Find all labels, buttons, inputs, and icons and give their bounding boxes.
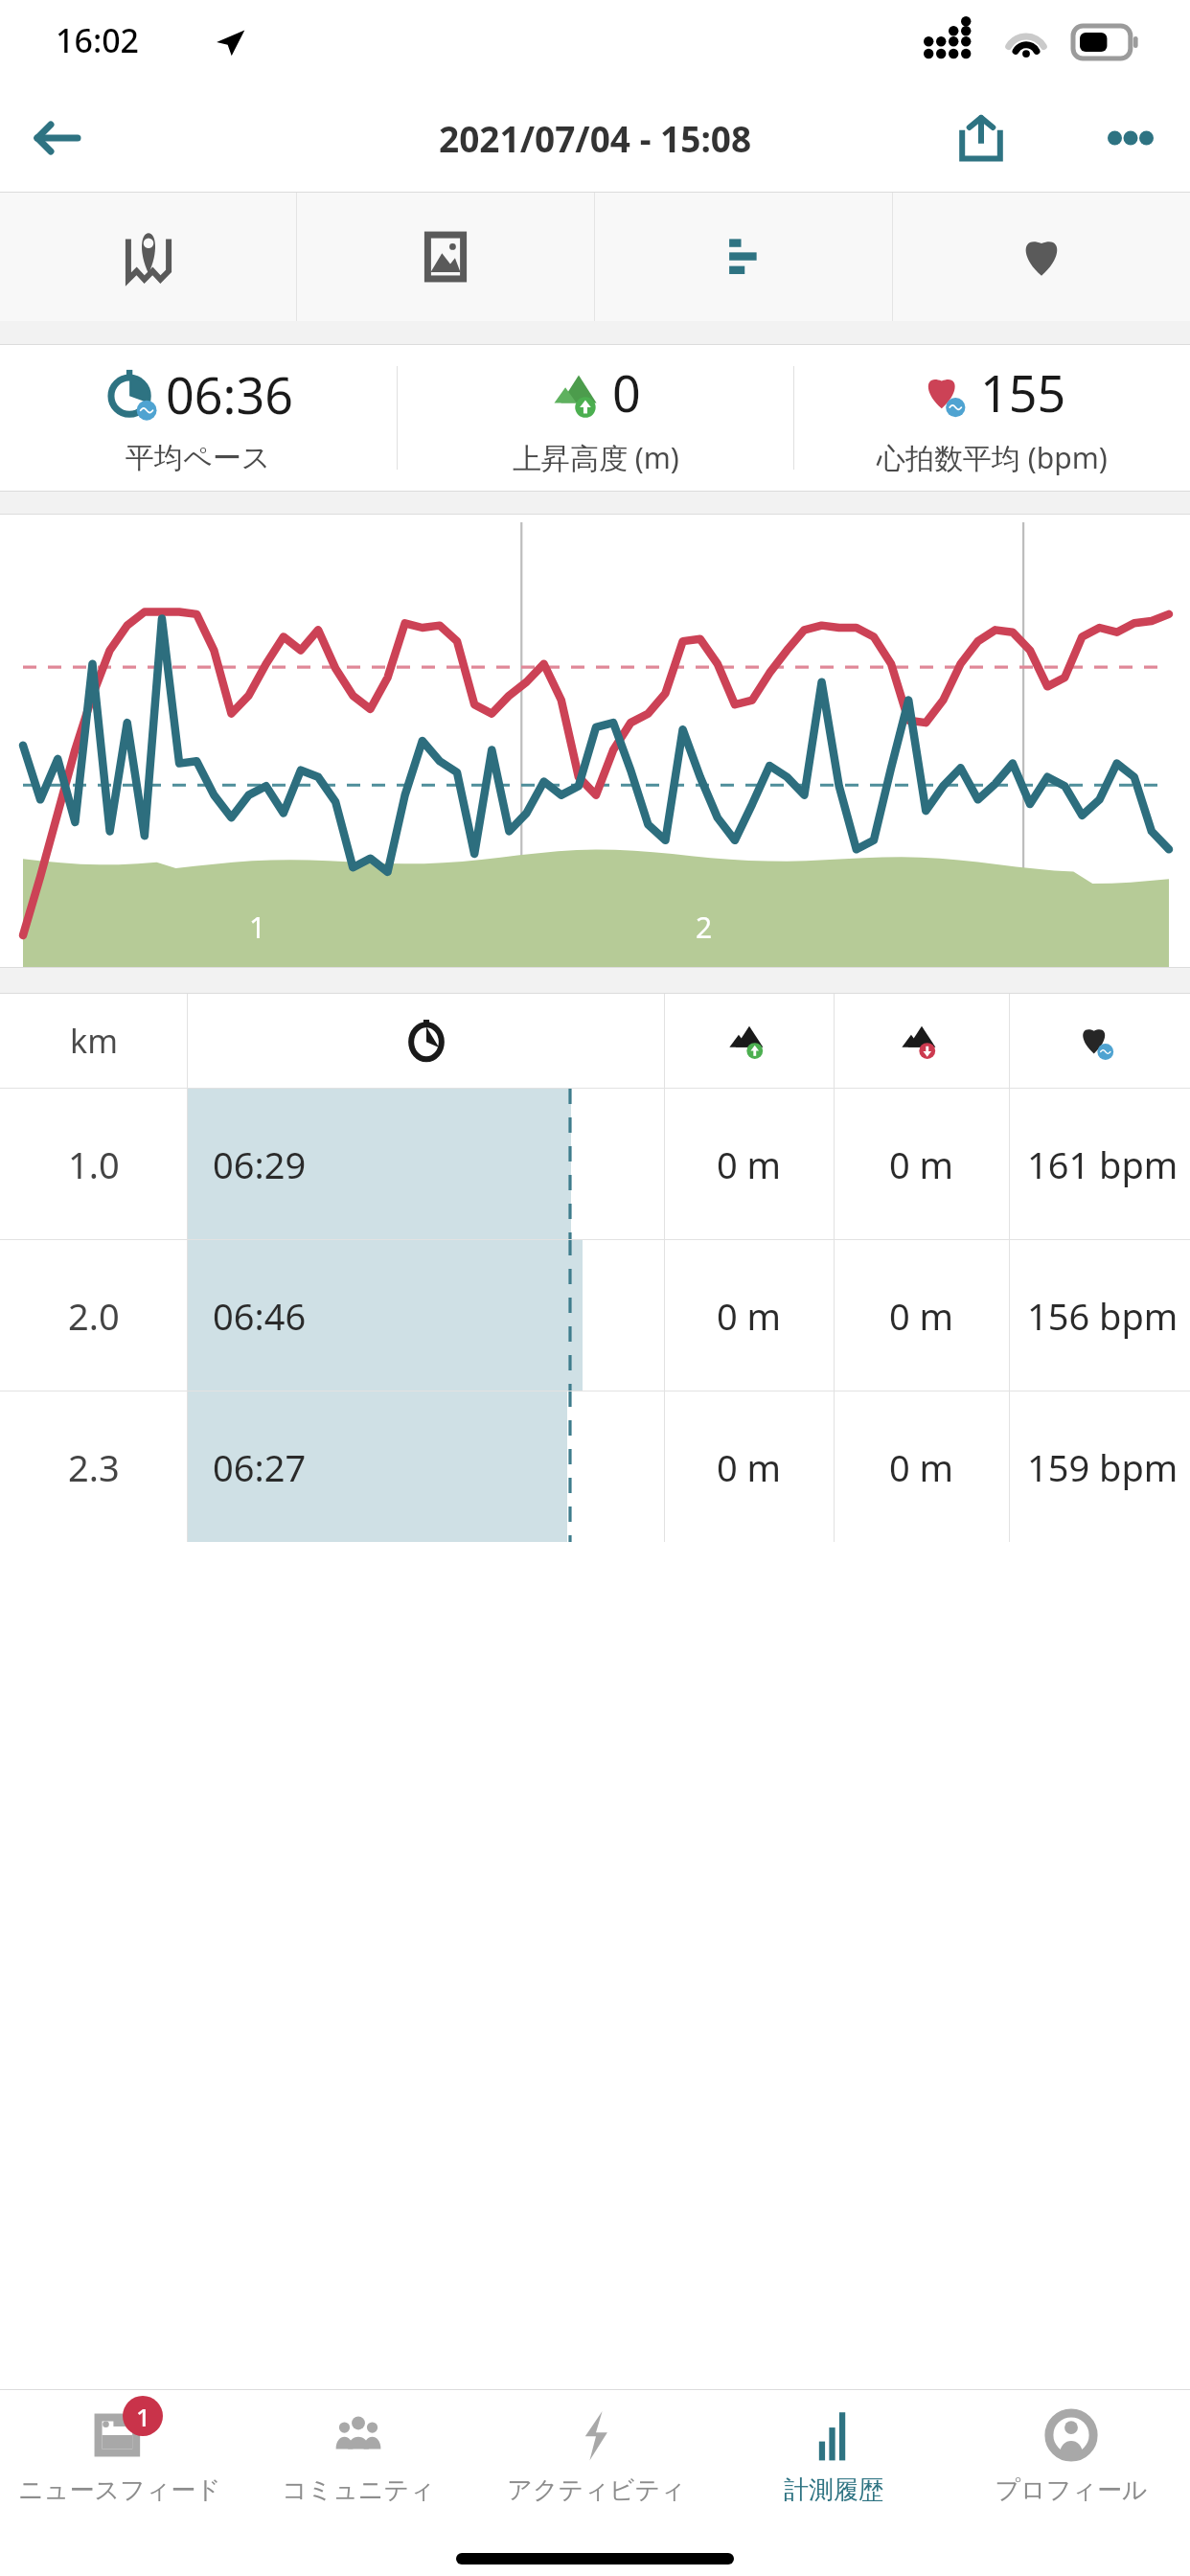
staticText: 06:29 (213, 1139, 307, 1189)
button[interactable]: Heart rate (893, 193, 1190, 321)
button[interactable]: Photos (297, 193, 594, 321)
button[interactable]: 1.0 (0, 1089, 1190, 1239)
button[interactable]: 155 (794, 345, 1190, 491)
button[interactable]: Map (0, 193, 296, 321)
button[interactable]: 0 (398, 345, 793, 491)
staticText: 心拍数平均 (bpm) (877, 438, 1108, 477)
staticText: 0 m (717, 1291, 782, 1341)
staticText: 161 bpm (1027, 1139, 1179, 1189)
staticText: アクティビティ (507, 2474, 686, 2506)
staticText: 156 bpm (1027, 1291, 1179, 1341)
staticText: 1 (249, 908, 266, 947)
staticText: 0 m (717, 1139, 782, 1189)
staticText: 0 m (889, 1442, 954, 1492)
button[interactable]: 1 (0, 2390, 239, 2534)
button[interactable]: アクティビティ (477, 2390, 715, 2534)
button[interactable]: 2.3 (0, 1391, 1190, 1542)
staticText: コミュニティ (282, 2474, 435, 2506)
staticText: プロフィール (995, 2474, 1148, 2506)
staticText: 2.0 (68, 1291, 120, 1341)
button[interactable]: Stats (595, 193, 892, 321)
staticText: 0 m (889, 1291, 954, 1341)
button[interactable]: Share (943, 100, 1019, 176)
staticText: 平均ペース (126, 440, 271, 476)
staticText: 0 (612, 358, 641, 426)
button[interactable]: 計測履歴 (715, 2390, 952, 2534)
staticText: 1.0 (68, 1139, 120, 1189)
staticText: 上昇高度 (m) (513, 438, 679, 477)
button[interactable]: コミュニティ (239, 2390, 477, 2534)
button[interactable]: プロフィール (952, 2390, 1190, 2534)
staticText: 16:02 (56, 18, 140, 62)
staticText: 2.3 (68, 1442, 120, 1492)
staticText: 06:27 (213, 1442, 307, 1492)
button[interactable]: 2.0 (0, 1240, 1190, 1391)
button[interactable]: Back (19, 100, 96, 176)
staticText: 06:46 (213, 1291, 307, 1341)
staticText: ニュースフィード (18, 2474, 221, 2506)
staticText: 0 m (889, 1139, 954, 1189)
staticText: 155 (980, 358, 1066, 426)
staticText: 計測履歴 (784, 2474, 883, 2506)
staticText: 06:36 (166, 360, 293, 428)
staticText: 2021/07/04 - 15:08 (439, 114, 752, 162)
staticText: km (70, 1019, 118, 1063)
staticText: 2 (696, 908, 713, 947)
staticText: 1 (136, 2400, 150, 2433)
button[interactable]: 06:36 (0, 345, 397, 491)
staticText: 0 m (717, 1442, 782, 1492)
staticText: 159 bpm (1027, 1442, 1179, 1492)
button[interactable]: More options (1092, 100, 1169, 176)
